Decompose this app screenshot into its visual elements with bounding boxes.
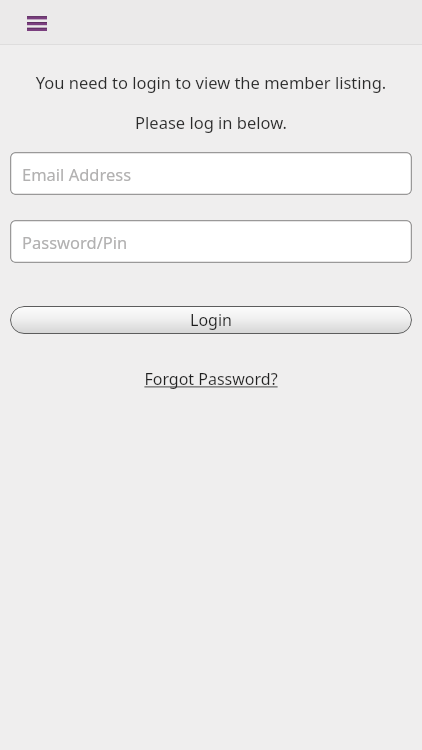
button[interactable]: Open navigation menu <box>20 9 48 37</box>
staticText: Please log in below. <box>0 111 422 133</box>
button[interactable]: Email Address <box>10 152 412 195</box>
staticText: You need to login to view the member lis… <box>0 71 422 93</box>
button[interactable]: Password/Pin <box>10 220 412 263</box>
button[interactable]: Login <box>10 306 412 334</box>
staticText: Login <box>190 309 232 331</box>
staticText: Email Address <box>22 163 132 185</box>
staticText: Password/Pin <box>22 231 128 253</box>
button[interactable]: Forgot Password? <box>140 366 282 392</box>
staticText: Forgot Password? <box>144 368 278 390</box>
